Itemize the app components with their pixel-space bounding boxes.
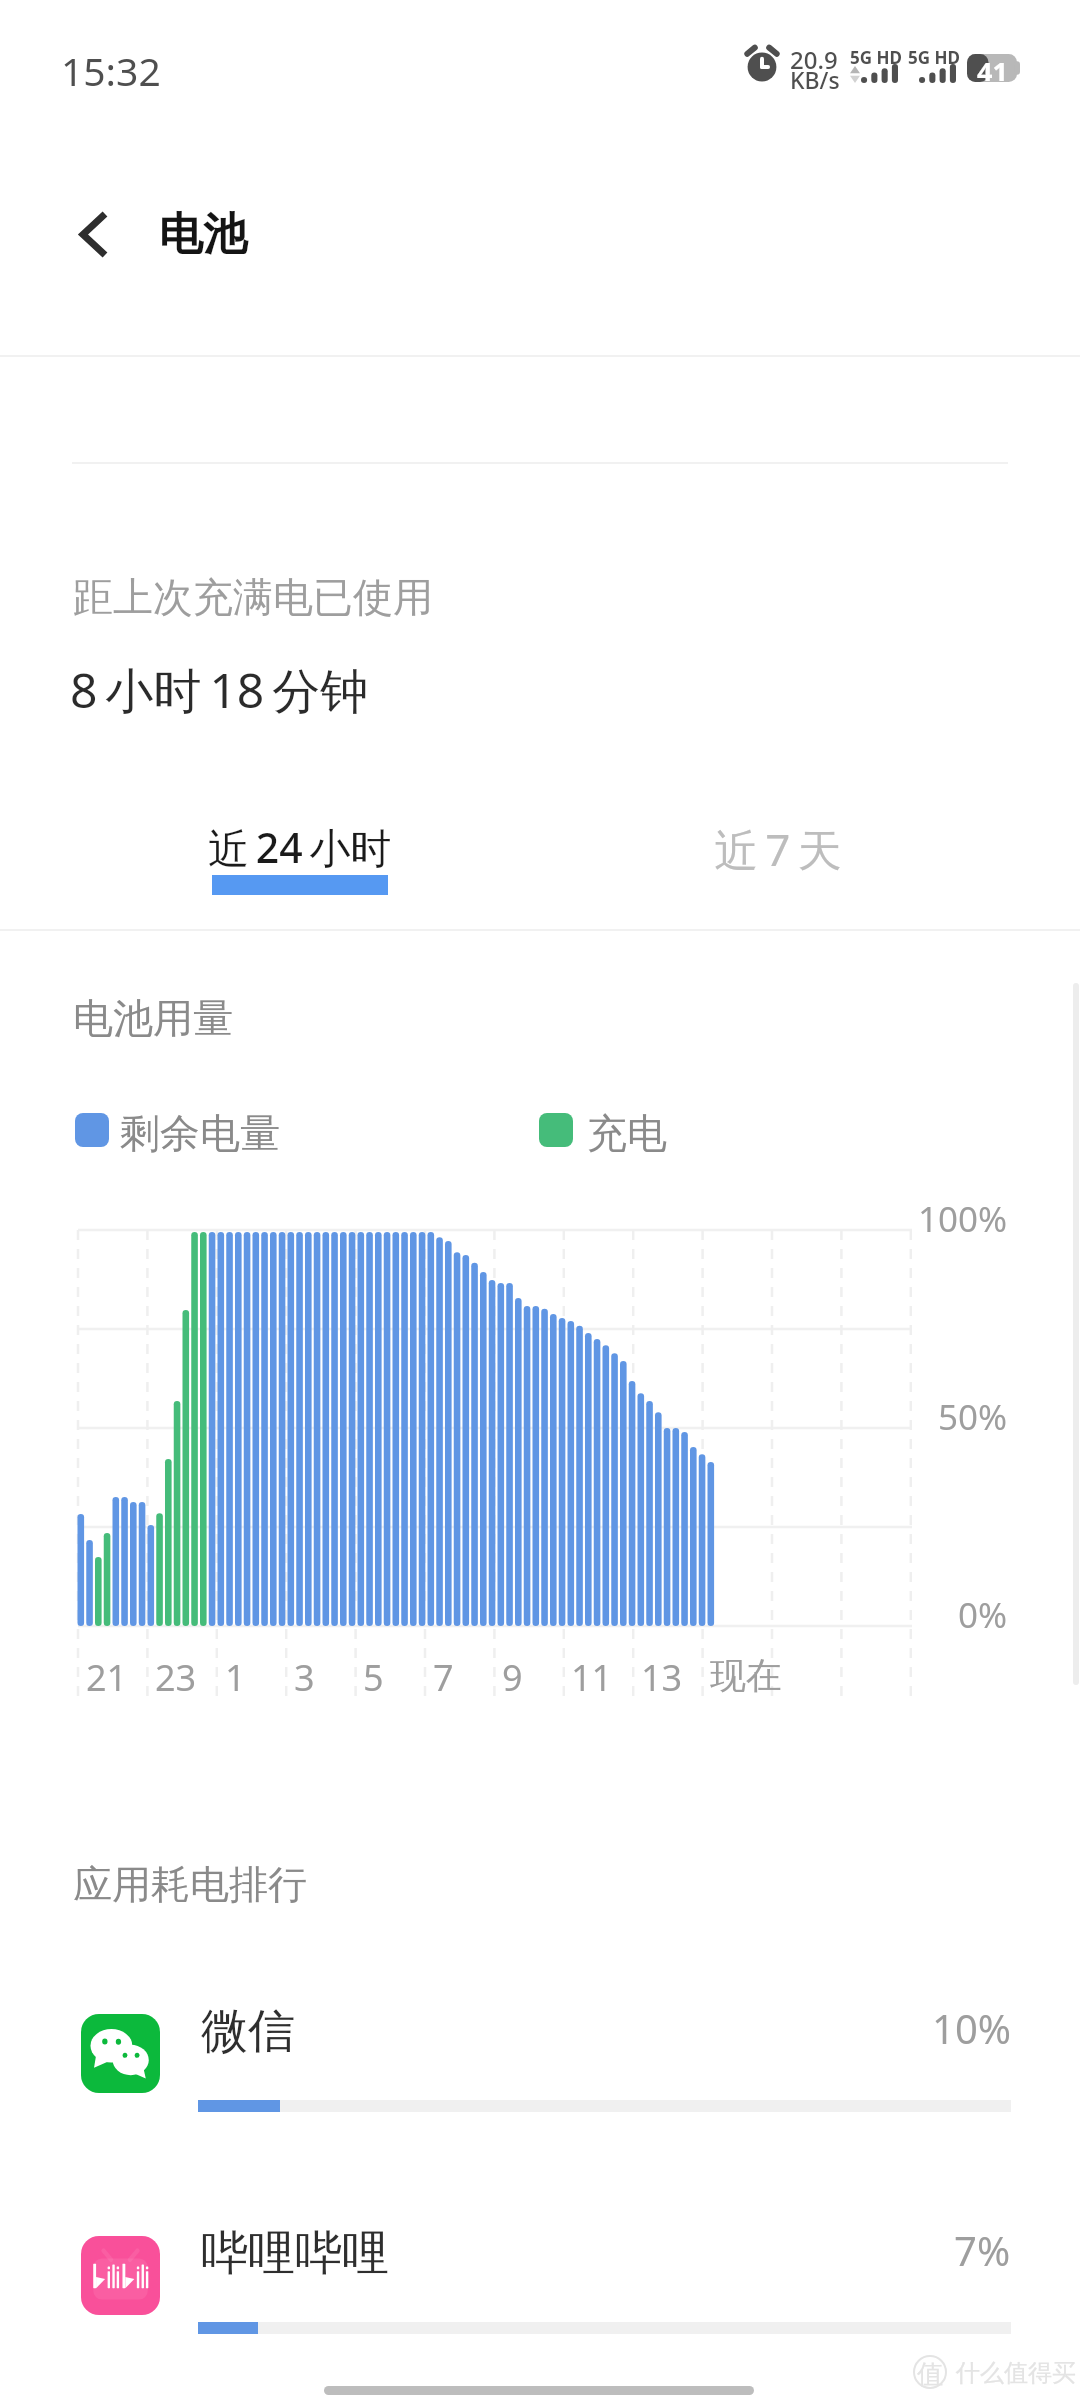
button[interactable]: 近 7 天: [560, 780, 996, 930]
button[interactable]: Back: [48, 191, 134, 277]
staticText: 值: [917, 2358, 943, 2391]
staticText: 距上次充满电已使用: [73, 572, 433, 622]
staticText: 11: [571, 1653, 613, 1702]
staticText: 23: [155, 1653, 197, 1702]
staticText: 近 7 天: [714, 819, 842, 879]
staticText: 5G HD: [850, 46, 902, 69]
staticText: 8 小时 18 分钟: [70, 657, 369, 723]
staticText: 10%: [932, 2001, 1011, 2055]
button[interactable]: 近 24 小时: [40, 780, 560, 930]
staticText: 100%: [918, 1195, 1008, 1243]
staticText: 41: [977, 53, 1008, 81]
button[interactable]: 哔哩哔哩: [0, 2216, 1080, 2346]
staticText: 13: [641, 1653, 683, 1702]
staticText: 电池: [159, 207, 247, 262]
staticText: 什么值得买: [956, 2358, 1076, 2388]
staticText: KB/s: [790, 64, 840, 95]
staticText: 21: [86, 1653, 128, 1702]
staticText: 现在: [710, 1653, 782, 1698]
staticText: 5G HD: [908, 46, 960, 69]
button[interactable]: 微信: [0, 1994, 1080, 2124]
staticText: 3: [294, 1653, 315, 1702]
staticText: 应用耗电排行: [73, 1860, 307, 1909]
staticText: 哔哩哔哩: [201, 2224, 389, 2283]
staticText: 15:32: [61, 44, 161, 97]
staticText: 9: [502, 1653, 523, 1702]
staticText: 剩余电量: [120, 1108, 280, 1158]
staticText: 7%: [954, 2223, 1011, 2277]
staticText: 微信: [201, 2002, 295, 2061]
staticText: 电池用量: [73, 993, 233, 1043]
staticText: 0%: [958, 1591, 1008, 1639]
staticText: 1: [225, 1653, 246, 1702]
staticText: 50%: [938, 1393, 1008, 1441]
staticText: 近 24 小时: [208, 819, 392, 875]
staticText: 20.9: [790, 43, 838, 76]
staticText: 充电: [587, 1108, 667, 1158]
staticText: 5: [363, 1653, 384, 1702]
staticText: 7: [433, 1653, 454, 1702]
